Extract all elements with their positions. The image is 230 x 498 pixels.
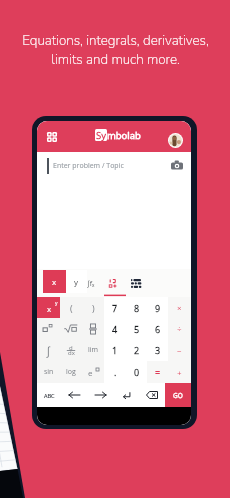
staticText: d — [69, 344, 73, 352]
button[interactable]: Functions — [87, 277, 100, 290]
staticText: GO — [173, 391, 183, 400]
staticText: ∫ — [46, 343, 51, 358]
staticText: x — [47, 303, 52, 314]
staticText: . — [114, 366, 117, 378]
button[interactable]: 9 — [147, 297, 168, 318]
staticText: 4 — [112, 323, 118, 335]
button[interactable]: Scan with camera — [171, 160, 183, 171]
staticText: 6 — [155, 323, 161, 335]
staticText: dx — [68, 349, 75, 357]
staticText: mbolab — [107, 129, 141, 141]
button[interactable]: 8 — [126, 297, 147, 318]
staticText: + — [177, 367, 182, 378]
button[interactable]: 2 — [126, 339, 147, 361]
button[interactable]: ( — [60, 297, 82, 318]
button[interactable]: Profile — [168, 133, 183, 148]
staticText: 7 — [112, 302, 118, 314]
staticText: ABC — [44, 392, 55, 399]
button[interactable]: 4 — [104, 318, 126, 339]
button[interactable]: New line — [113, 383, 139, 407]
button[interactable]: Backspace — [139, 383, 165, 407]
staticText: 1 — [112, 344, 118, 356]
staticText: lim — [88, 345, 99, 355]
button[interactable]: pow — [37, 318, 60, 339]
button[interactable]: x — [43, 270, 66, 293]
button[interactable]: lim — [82, 339, 104, 361]
button[interactable]: ) — [82, 297, 104, 318]
staticText: 9 — [155, 302, 161, 314]
button[interactable]: ÷ — [168, 318, 191, 339]
staticText: Enter problem / Topic — [53, 161, 124, 171]
button[interactable]: Numbers — [104, 269, 126, 297]
button[interactable]: GO — [165, 383, 191, 407]
staticText: × — [177, 302, 182, 313]
staticText: y — [55, 300, 58, 307]
button[interactable]: xy — [37, 297, 60, 318]
staticText: ÷ — [177, 323, 182, 334]
staticText: log — [66, 367, 76, 377]
staticText: Sy — [96, 129, 106, 141]
button[interactable]: 0 — [126, 361, 147, 383]
button[interactable]: frac — [82, 318, 104, 339]
button[interactable]: Move left — [62, 383, 87, 407]
staticText: x — [52, 276, 57, 287]
button[interactable]: int — [37, 339, 60, 361]
button[interactable]: Keyboard — [131, 279, 141, 290]
staticText: 0 — [134, 366, 140, 378]
button[interactable]: 6 — [147, 318, 168, 339]
staticText: = — [155, 366, 161, 378]
staticText: 8 — [134, 302, 140, 314]
staticText: ∫fₓ — [87, 279, 95, 289]
button[interactable]: 7 — [104, 297, 126, 318]
button[interactable]: Menu — [47, 132, 57, 142]
button[interactable]: ddx — [60, 339, 82, 361]
staticText: − — [177, 345, 182, 356]
button[interactable]: = — [147, 361, 168, 383]
staticText: sin — [44, 367, 54, 377]
staticText: 3 — [155, 344, 161, 356]
button[interactable]: + — [168, 361, 191, 383]
button[interactable]: sqrt — [60, 318, 82, 339]
button[interactable]: − — [168, 339, 191, 361]
button[interactable]: Move right — [87, 383, 113, 407]
button[interactable]: ABC — [37, 383, 62, 407]
staticText: 2 — [134, 344, 140, 356]
button[interactable]: 3 — [147, 339, 168, 361]
staticText: y — [74, 276, 79, 287]
staticText: Equations, integrals, derivatives, limit… — [22, 31, 209, 69]
button[interactable]: 1 — [104, 339, 126, 361]
staticText: ( — [70, 302, 73, 314]
button[interactable]: Sy — [95, 129, 141, 141]
button[interactable]: × — [168, 297, 191, 318]
staticText: e — [88, 367, 93, 378]
button[interactable]: 5 — [126, 318, 147, 339]
staticText: ) — [92, 302, 95, 314]
button[interactable]: y — [66, 270, 87, 293]
button[interactable]: sin — [37, 361, 60, 383]
button[interactable]: . — [104, 361, 126, 383]
staticText: 5 — [134, 323, 140, 335]
button[interactable]: log — [60, 361, 82, 383]
button[interactable]: ex — [82, 361, 104, 383]
